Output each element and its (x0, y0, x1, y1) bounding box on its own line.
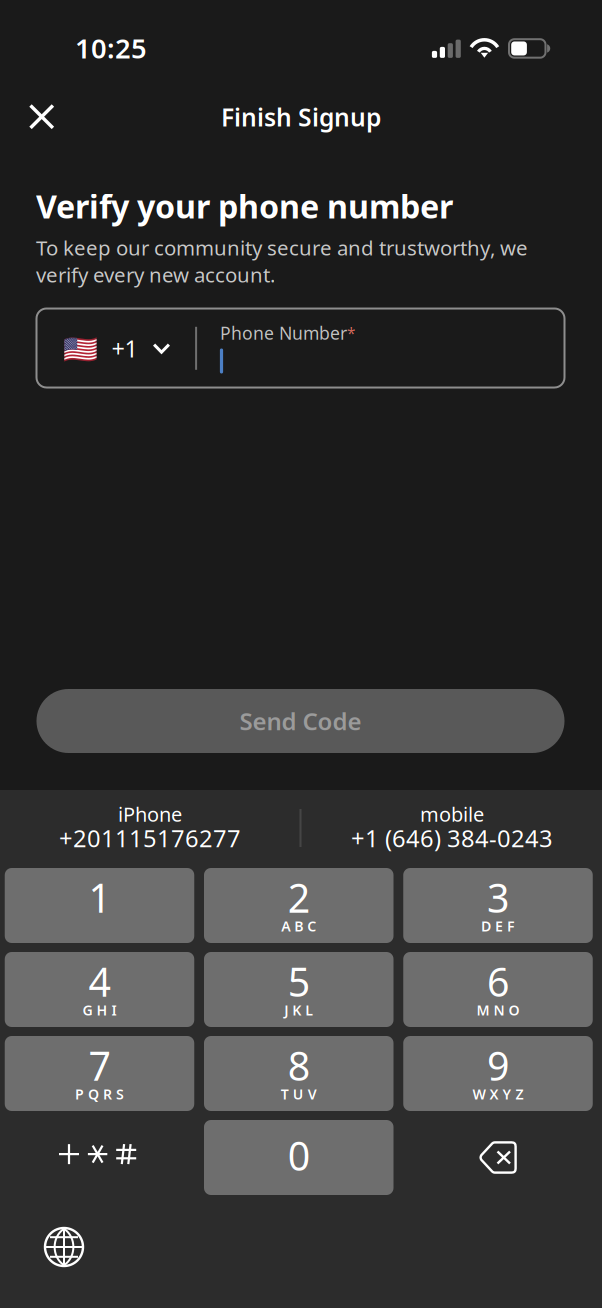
staticText: 1 (88, 871, 110, 924)
button[interactable]: 2 (204, 868, 393, 943)
staticText: 9 (487, 1039, 509, 1092)
button[interactable]: 7 (5, 1036, 194, 1111)
staticText: 7 (88, 1039, 110, 1092)
staticText: D E F (481, 917, 515, 935)
staticText: 4 (88, 955, 110, 1008)
staticText: M N O (476, 1001, 519, 1019)
staticText: To keep our community secure and trustwo… (36, 234, 528, 288)
staticText: W X Y Z (472, 1085, 523, 1103)
staticText: 0 (288, 1129, 310, 1182)
staticText: +1 (111, 333, 137, 364)
staticText: * (347, 323, 355, 343)
button[interactable]: Send Code (36, 689, 564, 753)
staticText: 6 (487, 955, 509, 1008)
staticText: mobile (420, 801, 484, 827)
staticText: +201115176277 (59, 822, 241, 854)
staticText: 10:25 (75, 30, 147, 66)
button[interactable]: Next keyboard (33, 1216, 95, 1278)
button[interactable]: 1 (5, 868, 194, 943)
staticText: P Q R S (75, 1085, 124, 1103)
staticText: J K L (284, 1001, 313, 1019)
button[interactable]: 0 (204, 1120, 393, 1195)
button[interactable]: Close (16, 91, 68, 143)
staticText: Finish Signup (221, 101, 381, 133)
staticText: iPhone (118, 801, 182, 827)
staticText: Phone Number (220, 321, 347, 345)
button[interactable]: 4 (5, 952, 194, 1027)
staticText: G H I (82, 1001, 116, 1019)
button[interactable]: Country code, United States, plus 1 (37, 309, 193, 386)
button[interactable]: mobile (306, 802, 598, 858)
staticText: 8 (288, 1039, 310, 1092)
button[interactable]: 8 (204, 1036, 393, 1111)
staticText: 3 (487, 871, 509, 924)
staticText: Verify your phone number (36, 185, 453, 227)
button[interactable]: Delete (403, 1120, 593, 1195)
button[interactable]: 6 (403, 952, 593, 1027)
button[interactable]: Plus, star, pound (5, 1120, 194, 1195)
staticText: T U V (281, 1085, 317, 1103)
button[interactable]: 9 (403, 1036, 593, 1111)
staticText: Send Code (239, 705, 361, 737)
staticText: +1 (646) 384-0243 (351, 822, 553, 854)
button[interactable]: 5 (204, 952, 393, 1027)
button[interactable]: 3 (403, 868, 593, 943)
staticText: 🇺🇸 (62, 333, 97, 365)
staticText: A B C (281, 917, 316, 935)
staticText: 5 (288, 955, 310, 1008)
staticText: 2 (288, 871, 310, 924)
button[interactable]: iPhone (4, 802, 296, 858)
